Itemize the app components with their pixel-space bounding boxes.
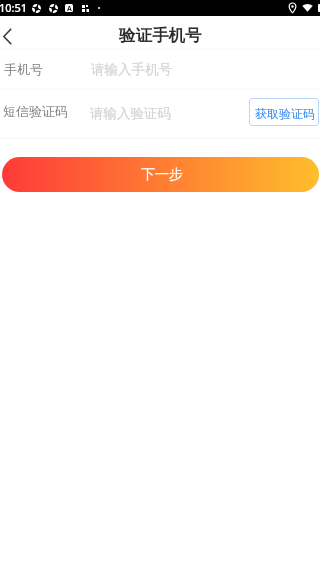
staticText: 请输入验证码 bbox=[90, 105, 171, 122]
staticText: 请输入手机号 bbox=[91, 61, 172, 78]
staticText: 手机号 bbox=[4, 61, 43, 77]
button[interactable]: Back bbox=[0, 20, 24, 48]
button[interactable]: 获取验证码 bbox=[249, 98, 319, 126]
staticText: 获取验证码 bbox=[255, 106, 315, 121]
staticText: 验证手机号 bbox=[119, 25, 202, 46]
button[interactable]: 下一步 bbox=[2, 157, 319, 192]
button[interactable]: 短信验证码 bbox=[0, 89, 245, 137]
staticText: 短信验证码 bbox=[3, 103, 68, 119]
staticText: 下一步 bbox=[141, 166, 183, 184]
staticText: 10:51 bbox=[0, 0, 28, 15]
staticText: A bbox=[67, 4, 72, 12]
button[interactable]: 手机号 bbox=[0, 49, 320, 88]
